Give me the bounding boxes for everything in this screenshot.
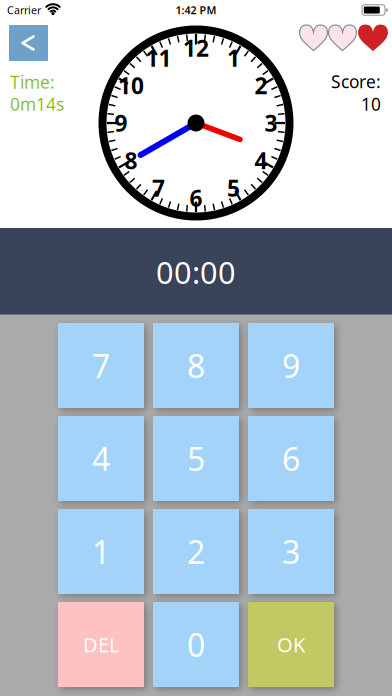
staticText: 1:42 PM bbox=[175, 3, 216, 17]
staticText: 1 bbox=[92, 530, 110, 573]
staticText: 0 bbox=[187, 623, 205, 666]
staticText: 7 bbox=[152, 173, 165, 203]
button[interactable]: 5 bbox=[153, 416, 239, 501]
button[interactable]: 0 bbox=[153, 602, 239, 687]
button[interactable]: 7 bbox=[58, 323, 144, 408]
staticText: 8 bbox=[187, 344, 205, 387]
staticText: 10 bbox=[118, 70, 144, 100]
staticText: 5 bbox=[187, 437, 205, 480]
staticText: Carrier bbox=[7, 3, 41, 17]
staticText: Score: bbox=[331, 70, 381, 93]
staticText: OK bbox=[277, 631, 305, 658]
button[interactable]: 9 bbox=[248, 323, 334, 408]
button[interactable]: 2 bbox=[153, 509, 239, 594]
staticText: 0m14s bbox=[10, 92, 64, 115]
staticText: 2 bbox=[254, 70, 267, 100]
button[interactable]: 1 bbox=[58, 509, 144, 594]
staticText: 3 bbox=[264, 108, 277, 138]
staticText: 5 bbox=[227, 173, 240, 203]
staticText: 00:00 bbox=[156, 252, 236, 292]
staticText: 10 bbox=[361, 92, 381, 115]
staticText: DEL bbox=[83, 631, 119, 658]
staticText: 3 bbox=[282, 530, 300, 573]
staticText: 7 bbox=[92, 344, 110, 387]
button[interactable]: 4 bbox=[58, 416, 144, 501]
staticText: 12 bbox=[183, 33, 209, 63]
button[interactable]: 3 bbox=[248, 509, 334, 594]
staticText: 9 bbox=[282, 344, 300, 387]
button[interactable]: 6 bbox=[248, 416, 334, 501]
staticText: 4 bbox=[92, 437, 110, 480]
staticText: 4 bbox=[254, 145, 267, 175]
button[interactable] bbox=[9, 25, 48, 61]
button[interactable]: DEL bbox=[58, 602, 144, 687]
staticText: 2 bbox=[187, 530, 205, 573]
staticText: 11 bbox=[145, 43, 171, 73]
staticText: 6 bbox=[189, 183, 202, 213]
staticText: 9 bbox=[114, 108, 127, 138]
staticText: 1 bbox=[227, 43, 240, 73]
button[interactable]: 8 bbox=[153, 323, 239, 408]
button[interactable]: OK bbox=[248, 602, 334, 687]
staticText: Time: bbox=[10, 70, 55, 93]
staticText: 6 bbox=[282, 437, 300, 480]
staticText: 8 bbox=[124, 145, 137, 175]
